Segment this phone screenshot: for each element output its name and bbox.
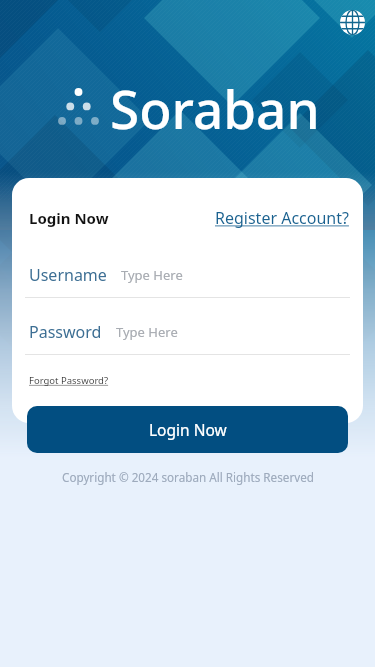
staticText: Copyright © 2024 soraban All Rights Rese… [62,469,314,485]
staticText: Type Here [116,323,178,341]
button[interactable]: Language [336,6,369,39]
staticText: Login Now [29,208,109,228]
staticText: Forgot Password? [29,374,109,387]
button[interactable]: Register Account? [215,207,349,229]
staticText: Login Now [149,419,227,440]
button[interactable]: Forgot Password? [29,374,109,387]
staticText: Register Account? [215,207,349,229]
staticText: Soraban [110,72,320,144]
staticText: Password [29,321,102,343]
button[interactable]: Login Now [27,406,348,453]
staticText: Username [29,264,107,286]
staticText: Type Here [121,266,183,284]
